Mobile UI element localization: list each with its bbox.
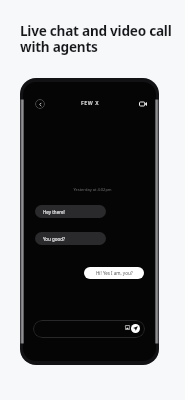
button[interactable]: Attach image xyxy=(123,323,132,332)
staticText: Live chat and video call with agents xyxy=(20,21,172,56)
button[interactable]: Back xyxy=(35,99,45,109)
staticText: Yesterday at 4:02pm xyxy=(26,187,156,192)
button[interactable]: Hi! Yes I am, you? xyxy=(84,267,144,279)
button[interactable]: You good? xyxy=(35,232,106,245)
staticText: Hi! Yes I am, you? xyxy=(96,270,133,276)
staticText: FEW X xyxy=(81,99,100,106)
button[interactable] xyxy=(33,320,145,338)
button[interactable]: Hey there! xyxy=(35,205,106,218)
staticText: Hey there! xyxy=(43,209,65,215)
button[interactable]: Send message xyxy=(131,324,140,333)
button[interactable]: Start video call xyxy=(137,98,149,110)
staticText: You good? xyxy=(43,236,65,242)
